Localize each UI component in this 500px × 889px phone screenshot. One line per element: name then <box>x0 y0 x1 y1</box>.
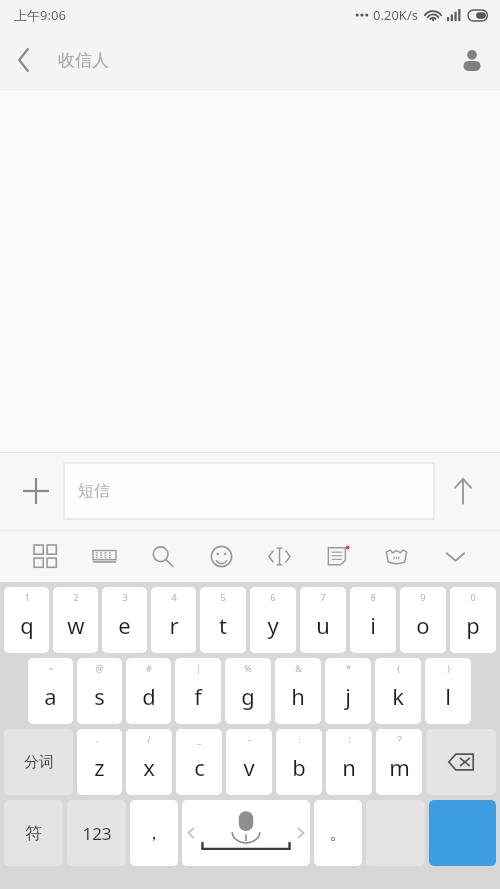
button[interactable]: 2 <box>53 587 98 653</box>
staticText: k <box>392 681 404 711</box>
button[interactable]: _ <box>176 729 222 795</box>
button[interactable]: % <box>225 658 271 724</box>
staticText: v <box>243 752 255 782</box>
button[interactable]: 1 <box>4 587 49 653</box>
button[interactable]: Edit cursor <box>260 533 298 579</box>
staticText: & <box>295 662 302 674</box>
staticText: d <box>142 681 156 711</box>
button[interactable]: ， <box>130 800 178 866</box>
button[interactable]: / <box>126 729 172 795</box>
staticText: b <box>292 752 306 782</box>
staticText: 8 <box>370 591 376 603</box>
button[interactable]: 分词 <box>4 729 73 795</box>
button[interactable]: 收信人 <box>48 30 129 90</box>
button[interactable]: 9 <box>400 587 446 653</box>
button[interactable]: - <box>226 729 272 795</box>
button[interactable]: : <box>276 729 322 795</box>
button[interactable]: 短信 <box>64 463 434 519</box>
button[interactable]: & <box>275 658 321 724</box>
staticText: 7 <box>320 591 326 603</box>
button[interactable]: 7 <box>300 587 346 653</box>
button[interactable]: Translate <box>319 533 357 579</box>
staticText: # <box>146 662 152 674</box>
staticText: c <box>194 752 205 782</box>
button[interactable]: Space <box>182 800 310 866</box>
button[interactable]: | <box>175 658 221 724</box>
staticText: j <box>345 681 351 711</box>
button[interactable]: 5 <box>200 587 246 653</box>
button[interactable]: 。 <box>314 800 362 866</box>
staticText: n <box>342 752 356 782</box>
button[interactable]: 、 <box>77 729 122 795</box>
staticText: ~ <box>48 662 54 674</box>
button[interactable]: ~ <box>28 658 73 724</box>
staticText: t <box>219 610 227 640</box>
staticText: / <box>147 733 151 745</box>
staticText: 分词 <box>24 753 54 772</box>
staticText: 、 <box>95 733 104 744</box>
button[interactable]: 8 <box>350 587 396 653</box>
staticText: e <box>118 610 131 640</box>
staticText: r <box>169 610 179 640</box>
staticText: s <box>94 681 105 711</box>
staticText: 4 <box>171 591 177 603</box>
staticText: ； <box>345 733 354 744</box>
staticText: m <box>389 752 410 782</box>
button[interactable]: Keyboard <box>85 533 123 579</box>
staticText: 。 <box>329 822 347 845</box>
button[interactable]: 0 <box>450 587 496 653</box>
staticText: h <box>291 681 305 711</box>
staticText: 3 <box>122 591 128 603</box>
button[interactable]: * <box>325 658 371 724</box>
button[interactable]: ) <box>425 658 471 724</box>
button[interactable]: Skins <box>377 533 415 579</box>
button[interactable]: @ <box>77 658 122 724</box>
button[interactable]: Contacts <box>444 30 500 90</box>
staticText: | <box>196 662 201 674</box>
staticText: ) <box>447 662 450 674</box>
button[interactable]: Add attachment <box>8 456 64 526</box>
staticText: : <box>298 733 301 745</box>
staticText: - <box>248 733 251 745</box>
staticText: % <box>244 662 252 674</box>
staticText: a <box>44 681 57 711</box>
button[interactable]: ( <box>375 658 421 724</box>
staticText: 2 <box>73 591 79 603</box>
staticText: p <box>466 610 480 640</box>
button[interactable]: Hide keyboard <box>436 533 474 579</box>
button[interactable]: ？ <box>376 729 422 795</box>
button[interactable]: 4 <box>151 587 196 653</box>
staticText: 短信 <box>78 481 110 501</box>
button[interactable]: 123 <box>67 800 126 866</box>
button[interactable]: Search <box>143 533 181 579</box>
button[interactable]: 符 <box>4 800 63 866</box>
staticText: 123 <box>82 822 112 845</box>
button[interactable]: Back <box>0 30 48 90</box>
staticText: i <box>370 610 376 640</box>
button[interactable]: Enter <box>429 800 496 866</box>
staticText: z <box>94 752 105 782</box>
button[interactable]: # <box>126 658 171 724</box>
button[interactable]: Apps grid <box>26 533 64 579</box>
staticText: o <box>416 610 430 640</box>
button[interactable]: Send <box>434 456 492 526</box>
staticText: ？ <box>395 733 404 744</box>
staticText: _ <box>197 733 201 745</box>
staticText: 收信人 <box>58 50 109 71</box>
staticText: @ <box>95 662 104 674</box>
staticText: y <box>267 610 279 640</box>
staticText: x <box>143 752 155 782</box>
staticText: g <box>241 681 255 711</box>
button[interactable]: ； <box>326 729 372 795</box>
button[interactable]: 6 <box>250 587 296 653</box>
staticText: * <box>346 662 351 674</box>
staticText: 9 <box>420 591 426 603</box>
button[interactable]: 3 <box>102 587 147 653</box>
staticText: 1 <box>24 591 30 603</box>
staticText: u <box>316 610 330 640</box>
button[interactable]: Backspace <box>426 729 496 795</box>
staticText: 6 <box>270 591 276 603</box>
staticText: 0.20K/s <box>373 6 418 24</box>
button[interactable]: Emoji <box>202 533 240 579</box>
